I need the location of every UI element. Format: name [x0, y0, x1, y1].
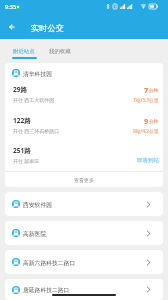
staticText: 实时公交: [31, 23, 64, 33]
button[interactable]: 清华科技园: [5, 63, 163, 187]
staticText: 9站/4.2公里: [133, 128, 159, 135]
staticText: 251路: [13, 146, 31, 155]
staticText: 开往 西工大软件园: [13, 97, 55, 104]
staticText: 分钟: [149, 88, 159, 94]
staticText: 附近站点: [13, 48, 35, 55]
staticText: 清华科技园: [23, 70, 52, 77]
staticText: 我的收藏: [49, 48, 71, 55]
button[interactable]: 西安软件园: [5, 192, 163, 216]
button[interactable]: 高新六路科技二路口: [5, 250, 163, 274]
staticText: 唐延路科技二路口: [23, 286, 70, 293]
button[interactable]: 唐延路科技二路口: [5, 279, 163, 300]
staticText: 7: [144, 85, 149, 95]
staticText: 开往 西三环石桥路口: [13, 128, 60, 135]
staticText: 即将到站: [137, 157, 159, 164]
staticText: 29路: [13, 85, 28, 94]
staticText: 122路: [13, 116, 31, 125]
staticText: 分钟: [149, 119, 159, 125]
staticText: 9: [144, 116, 149, 126]
button[interactable]: 附近站点: [13, 48, 35, 55]
button[interactable]: 我的收藏: [49, 48, 71, 55]
staticText: 9:35: [5, 3, 17, 11]
button[interactable]: Back: [3, 18, 21, 36]
staticText: 高新六路科技二路口: [23, 259, 76, 266]
staticText: 7站/3.3公里: [133, 97, 159, 104]
staticText: 高新医院: [23, 230, 47, 237]
staticText: 西安软件园: [23, 201, 52, 208]
staticText: 开往 郝家庄: [13, 158, 40, 165]
staticText: 查看更多: [74, 177, 94, 183]
button[interactable]: 高新医院: [5, 221, 163, 245]
button[interactable]: 查看更多: [5, 172, 163, 187]
